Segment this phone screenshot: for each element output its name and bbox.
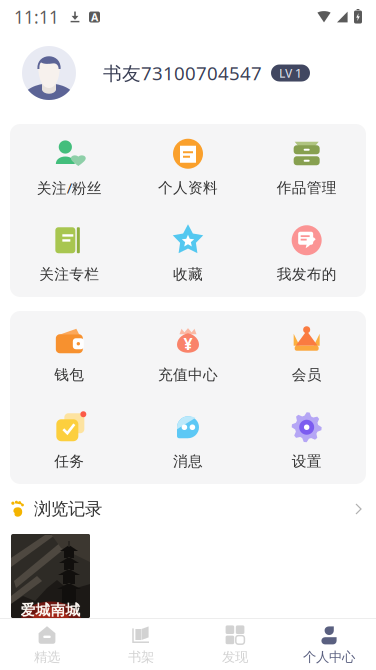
staticText: 收藏 bbox=[173, 265, 203, 283]
staticText: 书架 bbox=[128, 649, 154, 665]
button[interactable]: 爱城南城 bbox=[11, 534, 90, 618]
staticText: 会员 bbox=[292, 366, 322, 384]
staticText: LV 1 bbox=[279, 65, 302, 81]
staticText: 书友73100704547 bbox=[103, 61, 262, 85]
staticText: 钱包 bbox=[54, 366, 84, 384]
button[interactable]: ¥ bbox=[129, 311, 247, 397]
button[interactable]: 钱包 bbox=[10, 311, 129, 397]
staticText: 爱城南城 bbox=[20, 601, 80, 619]
button[interactable]: 作品管理 bbox=[247, 124, 366, 210]
button[interactable]: 我发布的 bbox=[247, 210, 366, 297]
staticText: 发现 bbox=[222, 649, 248, 665]
button[interactable]: 关注专栏 bbox=[10, 210, 129, 297]
staticText: 设置 bbox=[292, 452, 322, 470]
button[interactable]: 浏览记录 bbox=[0, 484, 376, 534]
button[interactable]: 消息 bbox=[129, 397, 247, 484]
staticText: 个人资料 bbox=[158, 179, 218, 197]
staticText: ¥ bbox=[183, 333, 192, 354]
staticText: A bbox=[91, 10, 98, 24]
button[interactable]: 设置 bbox=[247, 397, 366, 484]
staticText: 作品管理 bbox=[277, 179, 337, 197]
staticText: 个人中心 bbox=[303, 649, 355, 665]
staticText: 我发布的 bbox=[277, 265, 337, 283]
staticText: 精选 bbox=[34, 649, 60, 665]
button[interactable]: 关注/粉丝 bbox=[10, 124, 129, 210]
staticText: 消息 bbox=[173, 452, 203, 470]
button[interactable]: 会员 bbox=[247, 311, 366, 397]
staticText: 关注专栏 bbox=[39, 265, 99, 283]
button[interactable]: 发现 bbox=[188, 619, 282, 670]
staticText: 浏览记录 bbox=[34, 498, 102, 520]
staticText: 11:11 bbox=[14, 5, 59, 28]
staticText: 充值中心 bbox=[158, 366, 218, 384]
button[interactable]: 个人资料 bbox=[129, 124, 247, 210]
button[interactable]: 个人中心 bbox=[282, 619, 376, 670]
button[interactable]: 任务 bbox=[10, 397, 129, 484]
staticText: 关注/粉丝 bbox=[37, 178, 102, 197]
button[interactable]: 收藏 bbox=[129, 210, 247, 297]
staticText: 任务 bbox=[54, 452, 84, 470]
button[interactable]: 书架 bbox=[94, 619, 188, 670]
button[interactable]: 精选 bbox=[0, 619, 94, 670]
